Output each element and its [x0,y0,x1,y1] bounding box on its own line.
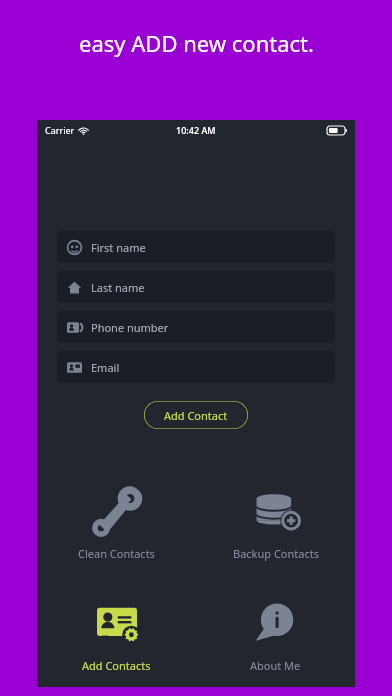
staticText: Last name [91,280,145,295]
staticText: Add Contact [164,408,228,423]
staticText: Add Contacts [82,658,151,673]
staticText: Clean Contacts [78,546,155,561]
button[interactable]: Add Contacts [37,593,196,677]
staticText: Phone number [91,320,169,335]
staticText: About Me [250,658,301,673]
button[interactable]: Clean Contacts [37,481,196,565]
button[interactable]: Add Contact [144,401,248,429]
button[interactable]: About Me [196,593,355,677]
staticText: Email [91,360,120,375]
staticText: First name [91,240,146,255]
staticText: Carrier [45,124,75,136]
button[interactable]: Last name [57,271,335,303]
button[interactable]: Phone number [57,311,335,343]
staticText: 10:42 AM [176,124,216,136]
button[interactable]: First name [57,231,335,263]
button[interactable]: Backup Contacts [196,481,355,565]
staticText: Backup Contacts [233,546,319,561]
button[interactable]: Email [57,351,335,383]
staticText: easy ADD new contact. [79,28,314,58]
